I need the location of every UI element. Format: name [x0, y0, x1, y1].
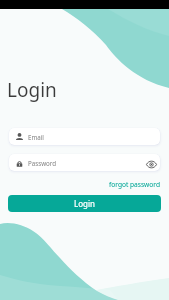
staticText: Login: [74, 198, 95, 209]
staticText: Login: [7, 77, 57, 103]
button[interactable]: Login: [8, 195, 161, 212]
button[interactable]: forgot password: [109, 180, 160, 189]
staticText: Email: [28, 133, 44, 141]
button[interactable]: Email: [9, 128, 160, 145]
button[interactable]: Show password: [144, 157, 158, 171]
staticText: Password: [28, 159, 56, 167]
button[interactable]: Password: [9, 154, 160, 171]
